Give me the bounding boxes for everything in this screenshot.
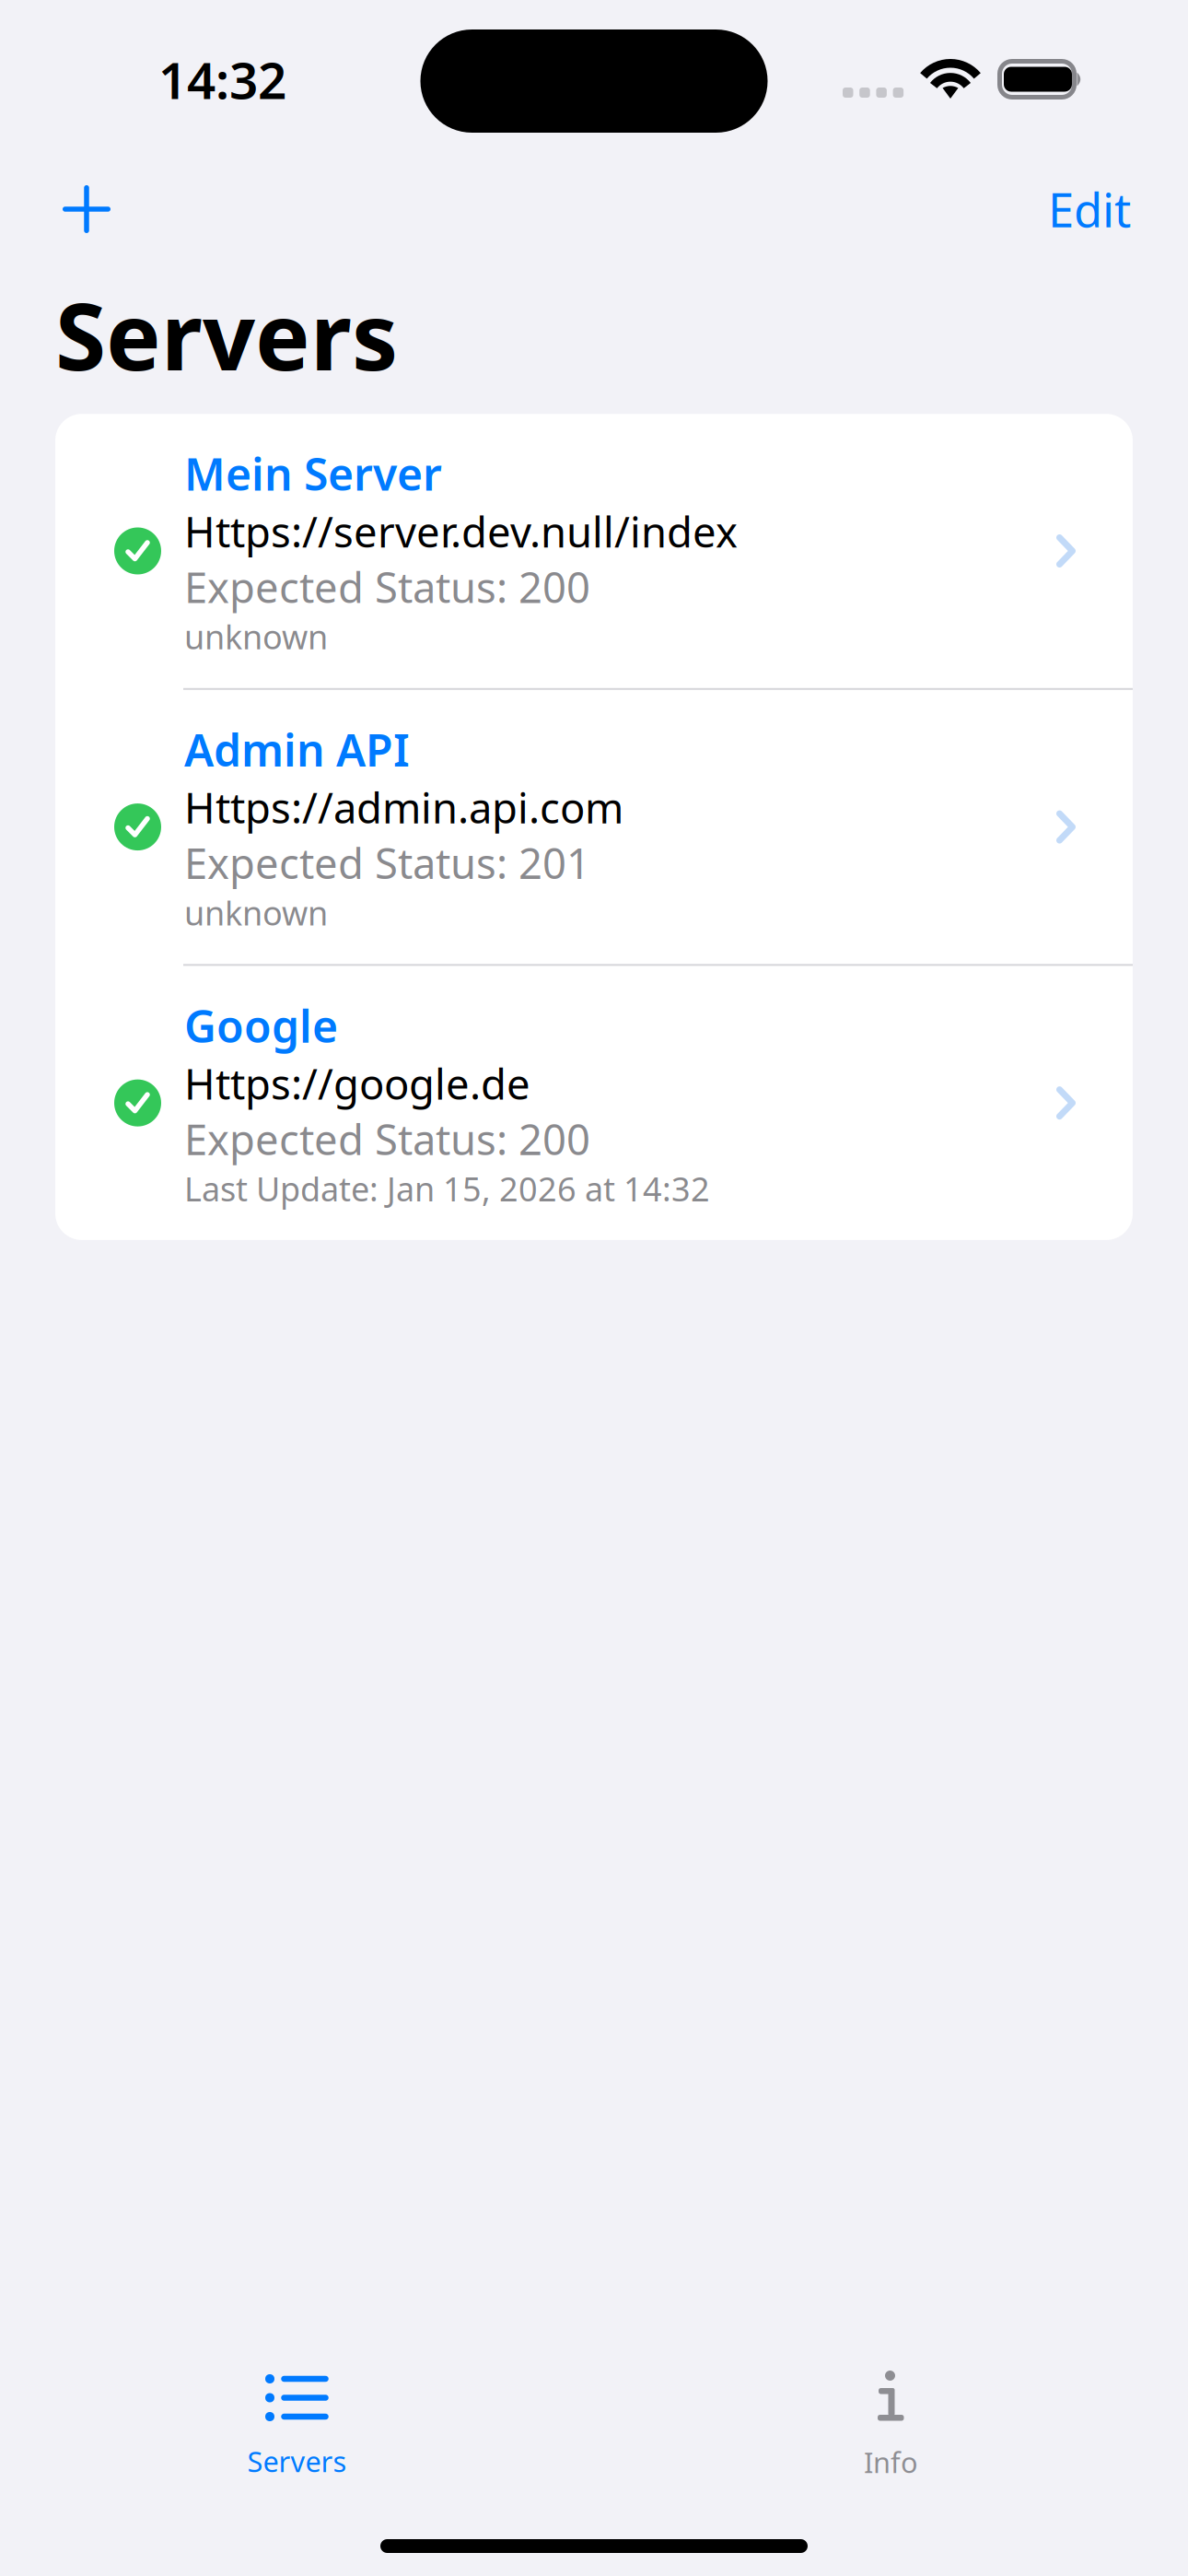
- staticText: Servers: [247, 2442, 347, 2480]
- staticText: Mein Server: [184, 443, 442, 504]
- staticText: Servers: [55, 272, 398, 397]
- button[interactable]: Servers: [0, 2374, 594, 2539]
- staticText: Google: [184, 995, 338, 1056]
- button[interactable]: Add server: [0, 147, 147, 258]
- staticText: Https://google.de: [184, 1056, 530, 1111]
- staticText: Https://admin.api.com: [184, 780, 623, 835]
- staticText: Expected Status: 200: [184, 1111, 590, 1166]
- staticText: Last Update: Jan 15, 2026 at 14:32: [184, 1166, 710, 1211]
- button[interactable]: Mein Server: [55, 414, 1133, 688]
- staticText: Https://server.dev.null/index: [184, 504, 738, 559]
- staticText: Expected Status: 201: [184, 835, 590, 891]
- staticText: unknown: [184, 891, 328, 935]
- button[interactable]: Google: [55, 966, 1133, 1240]
- staticText: Admin API: [184, 719, 410, 780]
- button[interactable]: Edit: [1011, 135, 1188, 271]
- staticText: Info: [864, 2443, 918, 2481]
- staticText: Expected Status: 200: [184, 559, 590, 615]
- staticText: Edit: [1048, 178, 1131, 240]
- staticText: 14:32: [158, 45, 286, 114]
- staticText: unknown: [184, 615, 328, 659]
- button[interactable]: Info: [594, 2374, 1188, 2539]
- button[interactable]: Admin API: [55, 690, 1133, 964]
